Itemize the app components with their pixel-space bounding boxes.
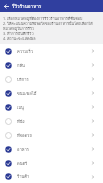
button[interactable]: ขนม/ผลไม้ bbox=[0, 86, 103, 100]
button[interactable]: อาหาร bbox=[0, 142, 103, 156]
staticText: ดนตรี bbox=[17, 160, 91, 167]
staticText: ร้านค้า bbox=[17, 173, 91, 180]
staticText: เมนู bbox=[17, 104, 91, 111]
button[interactable]: ดนตรี bbox=[0, 156, 103, 170]
button[interactable]: Back bbox=[0, 0, 12, 12]
staticText: ที่นั่ง bbox=[17, 118, 91, 125]
button[interactable]: ร้านค้า bbox=[0, 170, 103, 183]
button[interactable]: ที่นั่ง bbox=[0, 114, 103, 128]
button[interactable]: บริการ bbox=[0, 72, 103, 86]
button[interactable]: ความเร็ว bbox=[0, 44, 103, 58]
button[interactable]: เมนู bbox=[0, 100, 103, 114]
staticText: 2. ให้คะแนนความพึงพอใจของร้านอาหารนั้นโด… bbox=[3, 21, 101, 26]
staticText: บริการ bbox=[17, 76, 91, 83]
staticText: ความเร็ว bbox=[17, 48, 91, 55]
staticText: 4. สถานะจะแสดงผล bbox=[3, 36, 36, 41]
staticText: ที่จอดรถ bbox=[17, 132, 91, 139]
staticText: 3. ทำการบันทึกรีวิว bbox=[3, 31, 34, 36]
staticText: ขนม/ผลไม้ bbox=[17, 90, 91, 97]
staticText: หมวดหมู่ในการรีวิว bbox=[3, 26, 34, 31]
staticText: อาหาร bbox=[17, 146, 91, 153]
staticText: กลิ่น bbox=[17, 62, 91, 69]
staticText: 1. เลือกหมวดหมู่ที่ต้องการรีวิวร้านอาหาร… bbox=[3, 16, 83, 21]
staticText: รีวิวร้านอาหาร bbox=[12, 3, 42, 10]
button[interactable]: กลิ่น bbox=[0, 58, 103, 72]
button[interactable]: ที่จอดรถ bbox=[0, 128, 103, 142]
